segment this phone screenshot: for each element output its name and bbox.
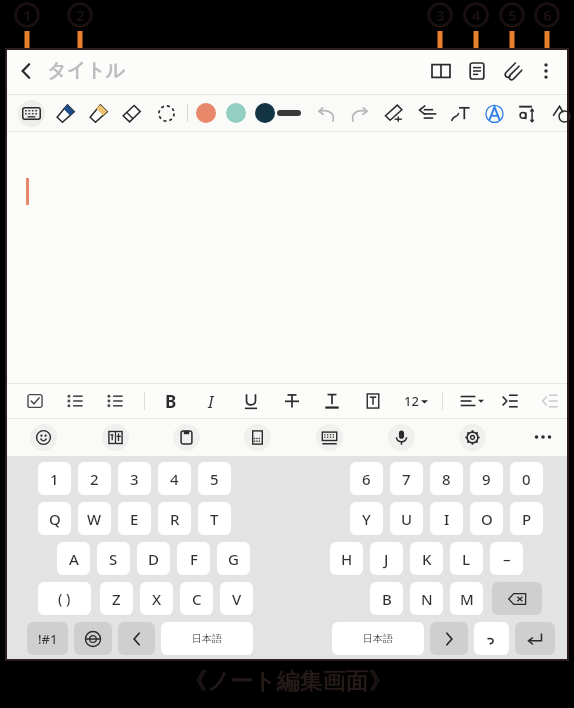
staticText: 3 bbox=[130, 469, 139, 489]
button[interactable]: One handed keyboard bbox=[244, 424, 271, 451]
button[interactable]: R bbox=[158, 502, 191, 535]
button[interactable]: Checklist bbox=[20, 386, 50, 416]
button[interactable]: Change language bbox=[74, 622, 112, 655]
button[interactable]: U bbox=[390, 502, 423, 535]
button[interactable]: J bbox=[370, 542, 403, 575]
staticText: 5 bbox=[508, 5, 517, 25]
button[interactable]: Redo bbox=[344, 98, 374, 128]
button[interactable]: A bbox=[57, 542, 90, 575]
staticText: S bbox=[109, 549, 118, 569]
button[interactable]: Recognize handwriting bbox=[479, 98, 509, 128]
button[interactable]: B bbox=[370, 582, 403, 615]
button[interactable]: Y bbox=[350, 502, 383, 535]
button[interactable]: Strikethrough bbox=[277, 386, 307, 416]
button[interactable]: Shapes bbox=[546, 98, 574, 128]
button[interactable]: W bbox=[78, 502, 111, 535]
staticText: U bbox=[401, 509, 413, 529]
button[interactable]: K bbox=[410, 542, 443, 575]
button[interactable]: P bbox=[510, 502, 543, 535]
button[interactable]: L bbox=[450, 542, 483, 575]
button[interactable]: ( ) bbox=[38, 582, 91, 615]
button[interactable]: H bbox=[330, 542, 363, 575]
button[interactable]: Note list bbox=[459, 48, 495, 94]
button[interactable]: V bbox=[220, 582, 253, 615]
button[interactable]: M bbox=[450, 582, 483, 615]
button[interactable]: N bbox=[410, 582, 443, 615]
button[interactable]: More options bbox=[531, 48, 561, 94]
button[interactable]: 2 bbox=[78, 462, 111, 495]
button[interactable]: Back bbox=[5, 48, 47, 94]
button[interactable]: !#1 bbox=[27, 622, 68, 655]
button[interactable]: 7 bbox=[390, 462, 423, 495]
button[interactable]: Bulleted list bbox=[100, 386, 130, 416]
button[interactable]: 8 bbox=[430, 462, 463, 495]
button[interactable]: 3 bbox=[118, 462, 151, 495]
button[interactable]: Z bbox=[100, 582, 133, 615]
button[interactable]: I bbox=[198, 384, 224, 418]
button[interactable]: Previous bbox=[118, 622, 155, 655]
button[interactable]: Stroke width bbox=[277, 110, 301, 116]
staticText: 1 bbox=[50, 469, 59, 489]
button[interactable]: Lasso select bbox=[151, 98, 181, 128]
button[interactable]: Navy color bbox=[255, 103, 275, 123]
button[interactable]: 1 bbox=[38, 462, 71, 495]
button[interactable]: Next bbox=[430, 622, 468, 655]
button[interactable]: S bbox=[97, 542, 130, 575]
button[interactable]: Book view bbox=[423, 48, 459, 94]
button[interactable]: Pen bbox=[50, 98, 80, 128]
button[interactable]: X bbox=[140, 582, 173, 615]
button[interactable]: 0 bbox=[510, 462, 543, 495]
button[interactable]: I bbox=[430, 502, 463, 535]
button[interactable]: Backspace bbox=[492, 582, 542, 615]
button[interactable]: Undo bbox=[311, 98, 341, 128]
button[interactable]: Clipboard bbox=[173, 424, 200, 451]
button[interactable]: Emoji bbox=[30, 424, 57, 451]
button[interactable]: Decrease indent bbox=[535, 386, 565, 416]
button[interactable]: Attach file bbox=[495, 48, 531, 94]
button[interactable]: Keyboard settings bbox=[459, 424, 486, 451]
button[interactable]: Font size 12 bbox=[397, 384, 435, 418]
button[interactable]: G bbox=[217, 542, 250, 575]
button[interactable]: Enter bbox=[515, 622, 555, 655]
button[interactable]: O bbox=[470, 502, 503, 535]
button[interactable]: D bbox=[137, 542, 170, 575]
button[interactable]: Underline bbox=[236, 386, 266, 416]
button[interactable]: 日本語 bbox=[161, 622, 253, 655]
staticText: B bbox=[382, 589, 392, 609]
button[interactable]: Text shape bbox=[445, 98, 475, 128]
button[interactable]: Eraser bbox=[116, 98, 146, 128]
button[interactable]: C bbox=[180, 582, 213, 615]
button[interactable]: B bbox=[158, 384, 184, 418]
button[interactable]: Highlighter bbox=[83, 98, 113, 128]
button[interactable]: Red color bbox=[196, 103, 216, 123]
button[interactable]: E bbox=[118, 502, 151, 535]
button[interactable]: Q bbox=[38, 502, 71, 535]
button[interactable]: Text color bbox=[317, 386, 347, 416]
button[interactable]: Keyboard bbox=[16, 98, 46, 128]
staticText: T bbox=[210, 509, 219, 529]
button[interactable]: Voice input bbox=[388, 424, 415, 451]
button[interactable]: F bbox=[177, 542, 210, 575]
button[interactable]: 4 bbox=[158, 462, 191, 495]
button[interactable]: More options bbox=[529, 423, 557, 451]
button[interactable]: – bbox=[490, 542, 523, 575]
button[interactable]: 5 bbox=[198, 462, 231, 495]
staticText: J bbox=[384, 549, 389, 569]
button[interactable]: 9 bbox=[470, 462, 503, 495]
button[interactable]: Convert to text bbox=[412, 98, 442, 128]
button[interactable]: Comma bbox=[474, 622, 509, 655]
button[interactable]: Green color bbox=[226, 103, 246, 123]
button[interactable]: 6 bbox=[350, 462, 383, 495]
button[interactable]: Numbered list bbox=[60, 386, 90, 416]
button[interactable]: Straighten text bbox=[512, 98, 542, 128]
button[interactable]: 日本語 bbox=[332, 622, 424, 655]
staticText: !#1 bbox=[38, 630, 58, 648]
button[interactable]: Highlight color bbox=[358, 386, 388, 416]
button[interactable]: Pen settings bbox=[378, 98, 408, 128]
button[interactable]: Alignment bbox=[454, 386, 490, 416]
button[interactable]: Translate bbox=[102, 424, 129, 451]
button[interactable]: T bbox=[198, 502, 231, 535]
staticText: 7 bbox=[402, 469, 411, 489]
button[interactable]: Increase indent bbox=[495, 386, 525, 416]
button[interactable]: Keyboard modes bbox=[316, 424, 343, 451]
